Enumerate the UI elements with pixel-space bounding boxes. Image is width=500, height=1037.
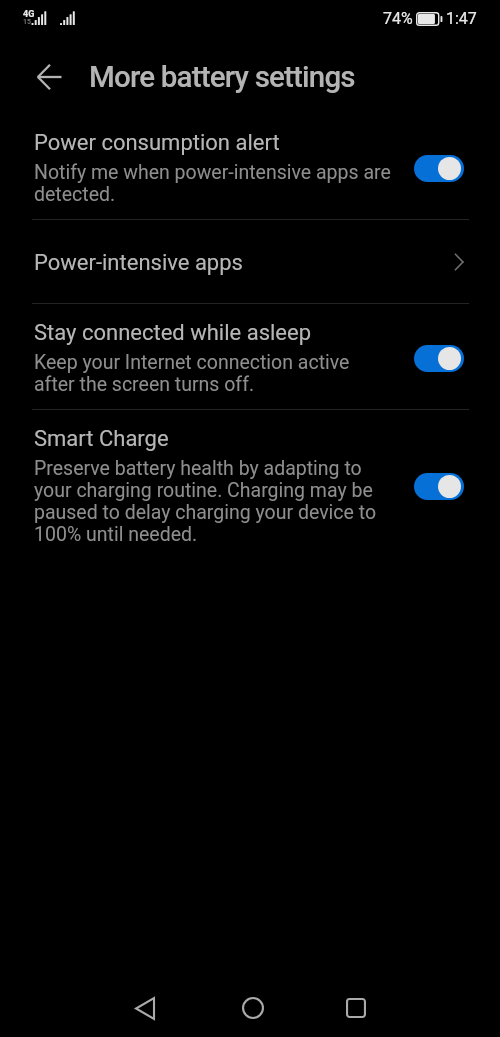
staticText: Smart Charge [34,426,169,452]
button[interactable]: Back [117,980,173,1036]
staticText: 15 [23,18,32,26]
button[interactable]: Back [26,53,74,101]
staticText: Power-intensive apps [34,250,243,276]
button[interactable]: Toggle [414,155,464,182]
staticText: Preserve battery health by adapting to y… [34,457,394,546]
staticText: 74% [383,9,413,28]
button[interactable]: Stay connected while asleep [0,304,500,409]
staticText: Stay connected while asleep [34,320,312,346]
staticText: Notify me when power-intensive apps are … [34,161,394,206]
button[interactable]: Home [225,980,281,1036]
staticText: Keep your Internet connection active aft… [34,351,394,396]
button[interactable]: Power consumption alert [0,114,500,219]
staticText: More battery settings [89,60,355,95]
staticText: Power consumption alert [34,130,280,156]
staticText: 4G [23,9,35,20]
button[interactable]: Smart Charge [0,410,500,559]
button[interactable]: Toggle [414,345,464,372]
button[interactable]: Toggle [414,473,464,500]
staticText: 1:47 [446,9,477,28]
button[interactable]: Recents [328,980,384,1036]
button[interactable]: Power-intensive apps [0,220,500,303]
